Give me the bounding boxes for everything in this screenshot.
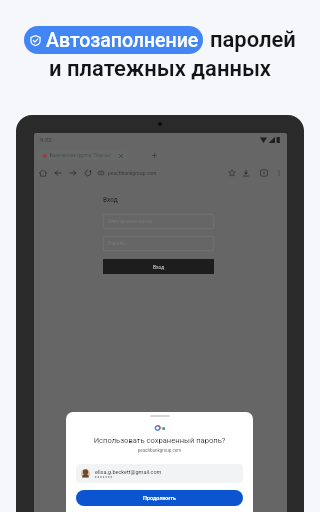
staticText: Использовать сохраненный пароль? [66,436,253,445]
other: Profile [260,169,268,177]
other: Forward [69,169,77,177]
staticText: elisa.g.beckett@gmail.com [95,469,162,475]
staticText: peachbankgroup.com [66,448,253,453]
staticText: паролей [210,27,296,53]
staticText: Продолжить [143,495,176,501]
button[interactable]: Вход [103,259,214,274]
staticText: peachbankgroup.com [108,170,157,176]
staticText: Автозаполнение [46,29,199,52]
other: Back [54,169,62,177]
other: Close tab [119,154,123,158]
button[interactable]: Автозаполнение [24,26,203,54]
staticText: Пароль [108,241,125,247]
staticText: Вход [153,264,165,270]
button[interactable]: elisa.g.beckett@gmail.com [76,464,243,483]
button[interactable]: Электронная почта [103,214,214,229]
other: More options [275,169,283,177]
button[interactable]: Пароль [103,236,214,251]
other: Reload [84,169,92,177]
button[interactable]: Банковская группа "Пирсон" [38,149,127,162]
other: Downloads [242,169,250,177]
staticText: 9:32 [40,136,52,143]
staticText: Электронная почта [108,219,152,225]
staticText: Вход [103,196,118,204]
other: Bookmark [228,169,236,177]
other: New tab [152,153,157,158]
other: Home [39,169,47,177]
staticText: Банковская группа "Пирсон" [50,153,112,158]
staticText: и платежных данных [0,56,320,82]
button[interactable]: Продолжить [76,490,243,506]
